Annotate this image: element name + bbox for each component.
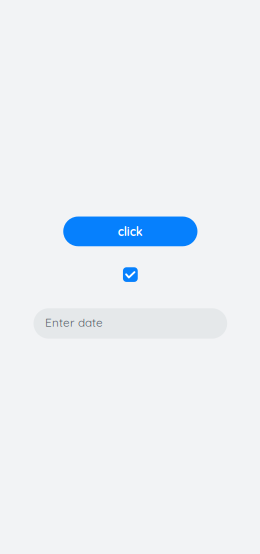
button[interactable]: click bbox=[63, 217, 197, 246]
button[interactable]: Enter date bbox=[33, 308, 227, 339]
staticText: Enter date bbox=[45, 315, 103, 330]
button[interactable]: Checkbox, checked bbox=[123, 267, 138, 282]
staticText: click bbox=[118, 224, 143, 239]
